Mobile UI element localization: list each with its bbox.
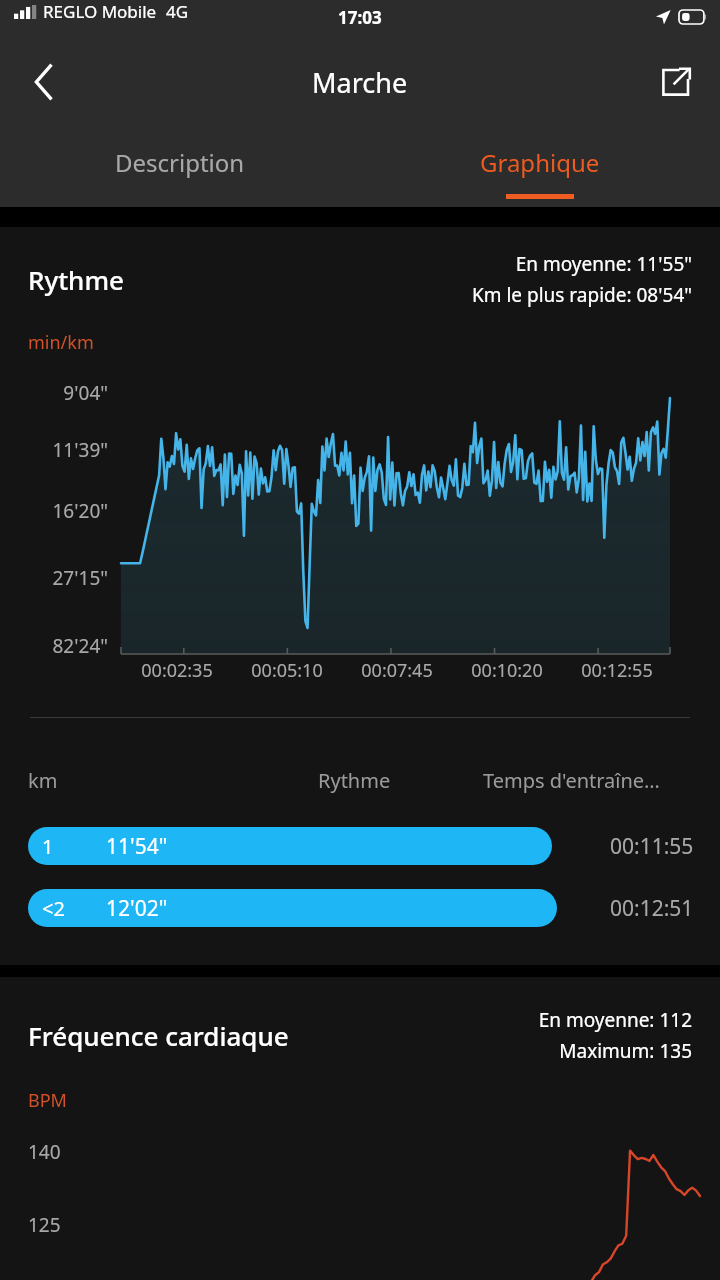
staticText: Fréquence cardiaque [28,1018,289,1053]
staticText: km [28,767,58,794]
staticText: 00:11:55 [610,832,694,861]
staticText: Km le plus rapide: 08'54" [471,282,692,308]
staticText: 00:12:51 [610,894,694,923]
staticText: 12'02" [106,894,168,923]
staticText: 82'24" [0,633,108,659]
staticText: 11'39" [0,437,108,463]
staticText: 00:10:20 [459,658,555,683]
staticText: Marche [312,64,408,101]
staticText: 11'54" [106,832,168,861]
staticText: Graphique [480,146,600,179]
staticText: BPM [28,1088,67,1113]
staticText: Maximum: 135 [559,1038,692,1064]
staticText: 17:03 [338,6,382,29]
staticText: 9'04" [0,380,108,406]
staticText: Temps d'entraîne… [483,767,660,794]
staticText: Description [115,146,245,179]
staticText: <2 [42,895,65,922]
staticText: En moyenne: 11'55" [515,251,692,277]
staticText: min/km [28,330,94,355]
button[interactable]: Graphique [360,130,720,207]
staticText: 16'20" [0,498,108,524]
staticText: REGLO Mobile [43,0,157,23]
button[interactable]: 1 [0,827,720,865]
button[interactable]: Back [18,56,70,108]
staticText: 00:02:35 [129,658,225,683]
staticText: 00:12:55 [569,658,665,683]
button[interactable]: Description [0,130,360,207]
staticText: 27'15" [0,565,108,591]
button[interactable]: <2 [0,889,720,927]
staticText: 125 [28,1212,61,1238]
staticText: 140 [28,1139,61,1165]
staticText: 4G [166,0,189,23]
staticText: En moyenne: 112 [538,1007,692,1033]
staticText: 00:07:45 [349,658,445,683]
staticText: 00:05:10 [239,658,335,683]
button[interactable]: Share [650,56,702,108]
staticText: 1 [42,833,54,860]
staticText: Rythme [318,767,391,794]
staticText: Rythme [28,262,124,297]
